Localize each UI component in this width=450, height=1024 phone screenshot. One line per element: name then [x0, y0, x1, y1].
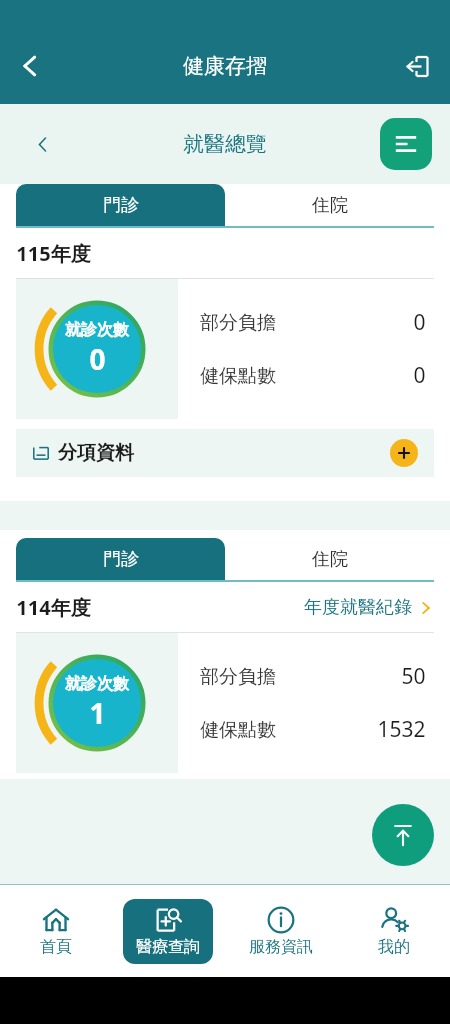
staticText: 住院 — [312, 548, 348, 571]
staticText: 1532 — [377, 715, 426, 744]
staticText: 我的 — [378, 937, 410, 957]
staticText: 就診次數 — [65, 674, 129, 694]
button[interactable]: 選單 — [380, 118, 432, 170]
staticText: 首頁 — [40, 937, 72, 957]
button[interactable]: 首頁 — [27, 899, 85, 964]
staticText: 分項資料 — [58, 441, 134, 465]
button[interactable]: 門診 — [16, 538, 225, 580]
button[interactable]: 醫療查詢 — [123, 899, 213, 964]
button[interactable]: 我的 — [365, 899, 423, 964]
staticText: 部分負擔 — [200, 311, 276, 335]
staticText: 部分負擔 — [200, 665, 276, 689]
staticText: 門診 — [103, 548, 139, 571]
staticText: 年度就醫紀錄 — [304, 596, 412, 619]
staticText: 健康存摺 — [183, 53, 267, 79]
staticText: 住院 — [312, 194, 348, 217]
button[interactable]: 分項資料 — [16, 429, 434, 477]
button[interactable]: 住院 — [225, 184, 434, 226]
staticText: 114年度 — [16, 594, 91, 621]
staticText: 0 — [413, 308, 426, 337]
button[interactable]: 回到頂端 — [372, 804, 434, 866]
button[interactable]: 返回 — [6, 42, 54, 90]
staticText: 服務資訊 — [249, 937, 313, 957]
button[interactable]: 門診 — [16, 184, 225, 226]
staticText: 1 — [89, 694, 106, 732]
button[interactable]: 登出 — [394, 44, 438, 88]
staticText: 0 — [413, 361, 426, 390]
button[interactable]: 年度就醫紀錄 — [304, 596, 434, 619]
button[interactable]: 住院 — [225, 538, 434, 580]
staticText: 門診 — [103, 194, 139, 217]
staticText: 就診次數 — [65, 320, 129, 340]
button[interactable]: 上一頁 — [22, 124, 62, 164]
staticText: 就醫總覽 — [183, 131, 267, 157]
button[interactable]: 服務資訊 — [236, 899, 326, 964]
staticText: 0 — [89, 340, 106, 378]
staticText: 115年度 — [16, 240, 91, 267]
staticText: 50 — [401, 662, 426, 691]
staticText: 健保點數 — [200, 718, 276, 742]
staticText: 醫療查詢 — [136, 937, 200, 957]
staticText: 健保點數 — [200, 364, 276, 388]
